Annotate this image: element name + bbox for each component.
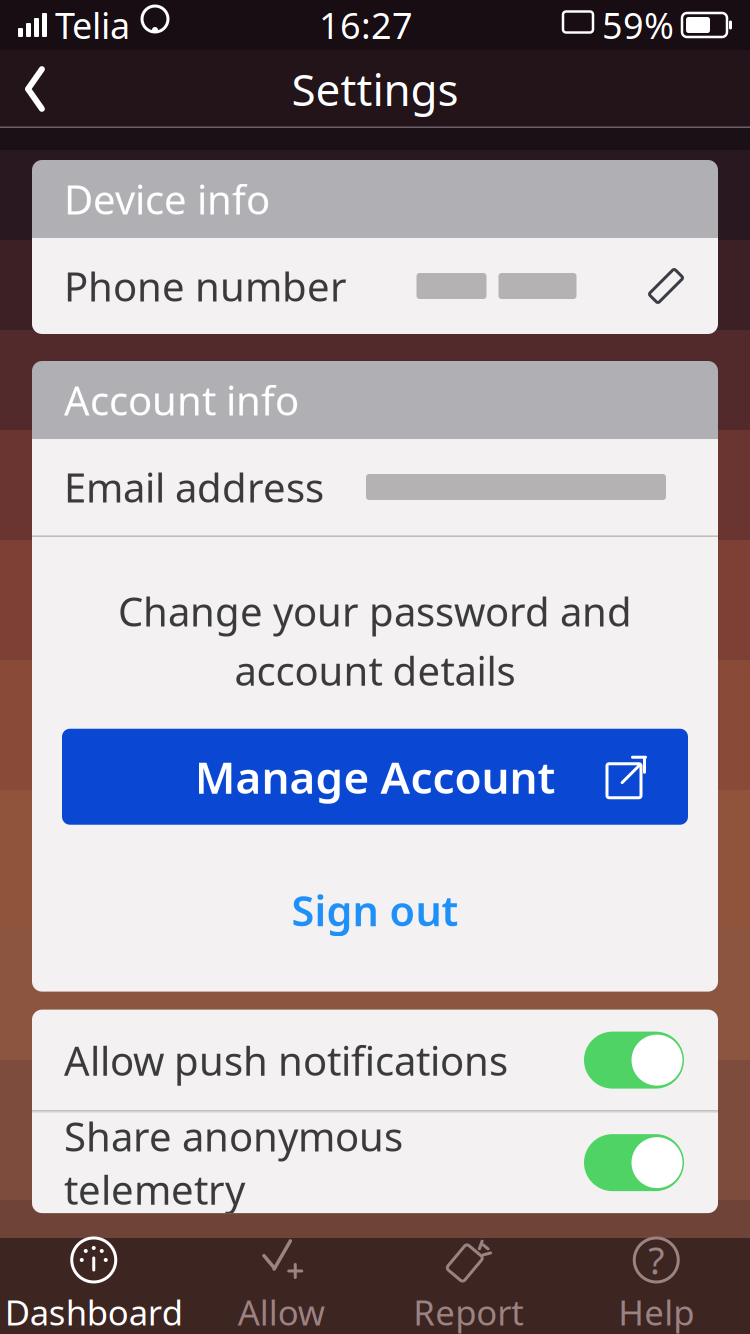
- button[interactable]: Dashboard: [0, 1238, 187, 1334]
- staticText: Settings: [291, 60, 458, 118]
- staticText: Help: [618, 1289, 694, 1334]
- staticText: Telia: [55, 1, 130, 49]
- button[interactable]: Back: [0, 50, 70, 128]
- staticText: Sign out: [291, 883, 458, 938]
- button[interactable]: Sign out: [32, 865, 718, 956]
- staticText: Device info: [64, 172, 270, 225]
- button[interactable]: Allow push notifications: [32, 1010, 718, 1111]
- button[interactable]: ?: [562, 1238, 750, 1334]
- button[interactable]: Manage Account: [62, 729, 688, 825]
- staticText: Share anonymous telemetry: [64, 1109, 403, 1216]
- staticText: 16:27: [319, 1, 413, 49]
- staticText: Report: [413, 1289, 524, 1334]
- staticText: Email address: [64, 460, 324, 513]
- button[interactable]: Share anonymous telemetry: [32, 1112, 718, 1213]
- button[interactable]: Email address: [32, 439, 718, 535]
- staticText: 59%: [602, 1, 674, 49]
- staticText: ?: [648, 1235, 664, 1285]
- staticText: account details: [234, 644, 515, 697]
- staticText: Dashboard: [5, 1289, 183, 1334]
- staticText: Allow: [238, 1289, 325, 1334]
- staticText: Account info: [64, 373, 299, 426]
- button[interactable]: Phone number: [32, 238, 718, 334]
- button[interactable]: Report: [375, 1238, 562, 1334]
- staticText: Allow push notifications: [64, 1034, 508, 1087]
- button[interactable]: Allow: [187, 1238, 375, 1334]
- staticText: Change your password and: [118, 584, 632, 638]
- staticText: Phone number: [64, 259, 347, 312]
- staticText: Manage Account: [194, 747, 555, 806]
